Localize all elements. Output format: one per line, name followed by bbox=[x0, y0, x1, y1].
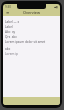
button[interactable]: Navigate up bbox=[5, 10, 10, 15]
staticText: Lorem ipsum dolor sit amet bbox=[5, 40, 46, 44]
staticText: Overview bbox=[23, 10, 40, 15]
staticText: Label — x bbox=[5, 20, 20, 24]
button[interactable]: Label — x bbox=[5, 19, 58, 24]
staticText: ▰▮ bbox=[54, 5, 58, 8]
button[interactable]: Abc xy bbox=[5, 29, 58, 34]
staticText: ≡ bbox=[6, 10, 10, 15]
staticText: Lorem ip bbox=[5, 52, 18, 56]
staticText: Qrs abc bbox=[5, 35, 17, 39]
button[interactable]: abc bbox=[5, 46, 58, 51]
button[interactable]: Lorem ip bbox=[5, 51, 58, 56]
staticText: Label bbox=[5, 25, 13, 29]
staticText: Abc xy bbox=[5, 30, 16, 34]
button[interactable] bbox=[3, 97, 60, 105]
staticText: 9:30 bbox=[5, 5, 11, 9]
button[interactable]: Lorem ipsum dolor sit amet bbox=[5, 39, 58, 44]
button[interactable]: Qrs abc bbox=[5, 34, 58, 39]
staticText: abc bbox=[5, 47, 11, 51]
button[interactable]: Label bbox=[5, 24, 58, 29]
